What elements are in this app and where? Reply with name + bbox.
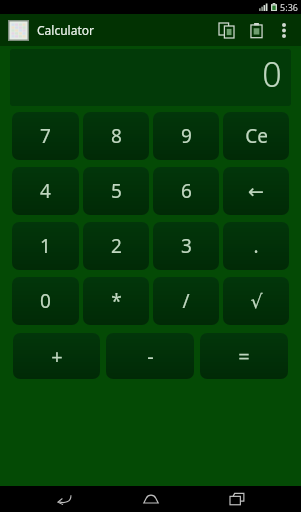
button[interactable]: ← bbox=[223, 167, 289, 215]
button[interactable]: 4 bbox=[12, 167, 79, 215]
staticText: / bbox=[182, 288, 190, 314]
button[interactable]: Copy bbox=[211, 15, 241, 45]
staticText: 6 bbox=[181, 178, 192, 204]
button[interactable]: Recent apps bbox=[215, 486, 259, 512]
staticText: √ bbox=[250, 290, 263, 312]
staticText: 8 bbox=[111, 123, 122, 149]
staticText: 5 bbox=[111, 178, 122, 204]
staticText: - bbox=[147, 343, 154, 370]
staticText: 3 bbox=[181, 233, 192, 259]
staticText: * bbox=[111, 288, 122, 314]
button[interactable]: 9 bbox=[153, 112, 219, 160]
button[interactable]: Ce bbox=[223, 112, 289, 160]
button[interactable]: 3 bbox=[153, 222, 219, 270]
button[interactable]: 8 bbox=[83, 112, 149, 160]
staticText: Ce bbox=[245, 123, 268, 149]
button[interactable]: 1 bbox=[12, 222, 79, 270]
staticText: + bbox=[51, 343, 63, 370]
button[interactable]: Paste bbox=[241, 15, 271, 45]
button[interactable]: + bbox=[13, 333, 100, 379]
button[interactable]: More options bbox=[271, 17, 297, 43]
staticText: 0 bbox=[262, 51, 282, 97]
staticText: 2 bbox=[111, 233, 122, 259]
staticText: 5:36 bbox=[280, 1, 298, 13]
staticText: 0 bbox=[40, 288, 51, 314]
button[interactable]: Back bbox=[42, 486, 86, 512]
button[interactable]: . bbox=[223, 222, 289, 270]
button[interactable]: Home bbox=[129, 486, 173, 512]
staticText: . bbox=[253, 233, 259, 259]
button[interactable]: 0 bbox=[10, 49, 291, 106]
button[interactable]: √ bbox=[223, 277, 289, 325]
staticText: 9 bbox=[181, 123, 192, 149]
staticText: ← bbox=[248, 180, 264, 202]
staticText: = bbox=[238, 343, 250, 370]
button[interactable]: 5 bbox=[83, 167, 149, 215]
button[interactable]: 2 bbox=[83, 222, 149, 270]
button[interactable]: 0 bbox=[12, 277, 79, 325]
staticText: 4 bbox=[40, 178, 51, 204]
button[interactable]: - bbox=[106, 333, 194, 379]
staticText: 1 bbox=[40, 233, 51, 259]
button[interactable]: 7 bbox=[12, 112, 79, 160]
staticText: 7 bbox=[40, 123, 51, 149]
staticText: Calculator bbox=[37, 22, 94, 38]
button[interactable]: * bbox=[83, 277, 149, 325]
button[interactable]: / bbox=[153, 277, 219, 325]
button[interactable]: = bbox=[200, 333, 288, 379]
button[interactable]: 6 bbox=[153, 167, 219, 215]
